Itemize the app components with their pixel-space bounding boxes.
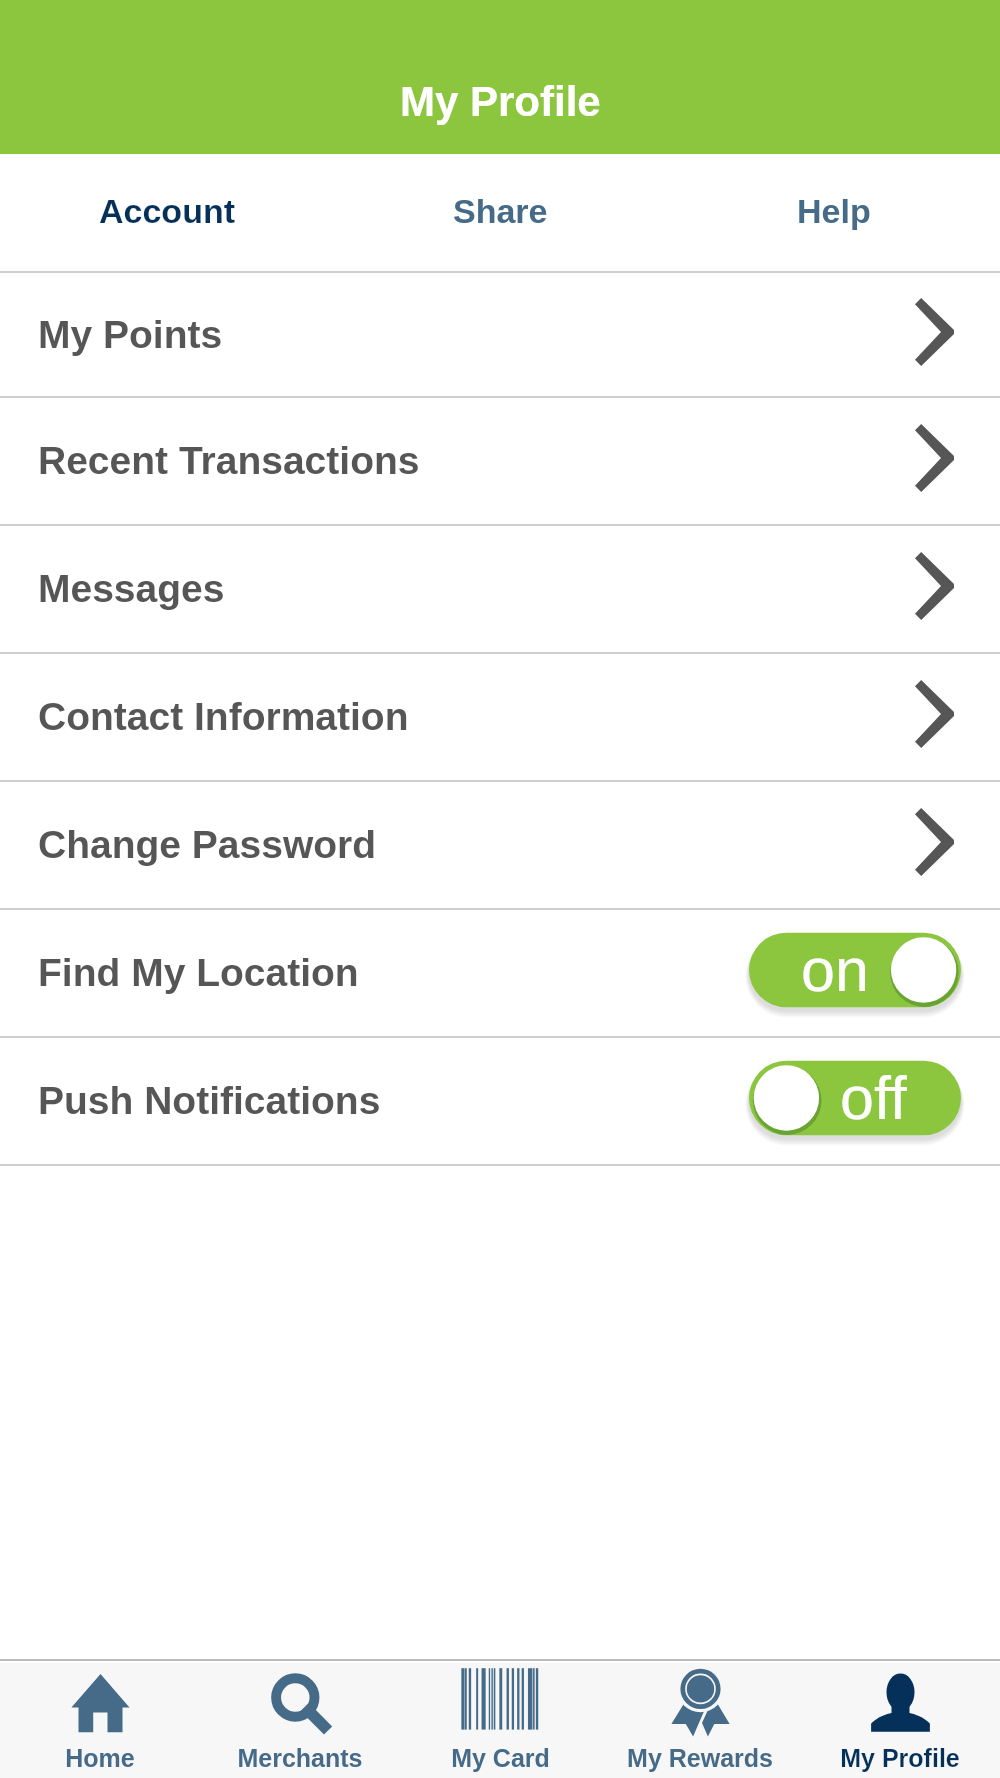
staticText: My Points bbox=[38, 313, 223, 357]
staticText: Account bbox=[99, 192, 235, 230]
staticText: off bbox=[840, 1064, 907, 1132]
staticText: My Rewards bbox=[627, 1744, 773, 1772]
staticText: Share bbox=[453, 192, 548, 230]
staticText: on bbox=[801, 936, 869, 1004]
button[interactable]: Home bbox=[0, 1663, 200, 1778]
button[interactable]: My Profile bbox=[800, 1663, 1000, 1778]
button[interactable]: Recent Transactions bbox=[0, 398, 1000, 524]
button[interactable]: Contact Information bbox=[0, 654, 1000, 780]
staticText: Find My Location bbox=[38, 951, 359, 995]
staticText: Push Notifications bbox=[38, 1079, 381, 1123]
staticText: My Card bbox=[451, 1744, 550, 1772]
staticText: Contact Information bbox=[38, 695, 409, 739]
button[interactable]: Toggle switch off bbox=[749, 1052, 961, 1144]
staticText: My Profile bbox=[400, 78, 601, 125]
staticText: Recent Transactions bbox=[38, 439, 420, 483]
button[interactable]: Toggle switch on bbox=[749, 924, 961, 1016]
button[interactable]: Push Notifications bbox=[0, 1038, 1000, 1164]
button[interactable]: Messages bbox=[0, 526, 1000, 652]
staticText: Help bbox=[797, 192, 871, 230]
button[interactable]: Find My Location bbox=[0, 910, 1000, 1036]
button[interactable]: My Card bbox=[400, 1663, 600, 1778]
button[interactable]: My Rewards bbox=[600, 1663, 800, 1778]
button[interactable]: Merchants bbox=[200, 1663, 400, 1778]
staticText: Messages bbox=[38, 567, 225, 611]
staticText: Home bbox=[65, 1744, 135, 1772]
staticText: Change Password bbox=[38, 823, 377, 867]
button[interactable]: Change Password bbox=[0, 782, 1000, 908]
staticText: Merchants bbox=[237, 1744, 363, 1772]
button[interactable]: My Points bbox=[0, 273, 1000, 396]
staticText: My Profile bbox=[840, 1744, 960, 1772]
